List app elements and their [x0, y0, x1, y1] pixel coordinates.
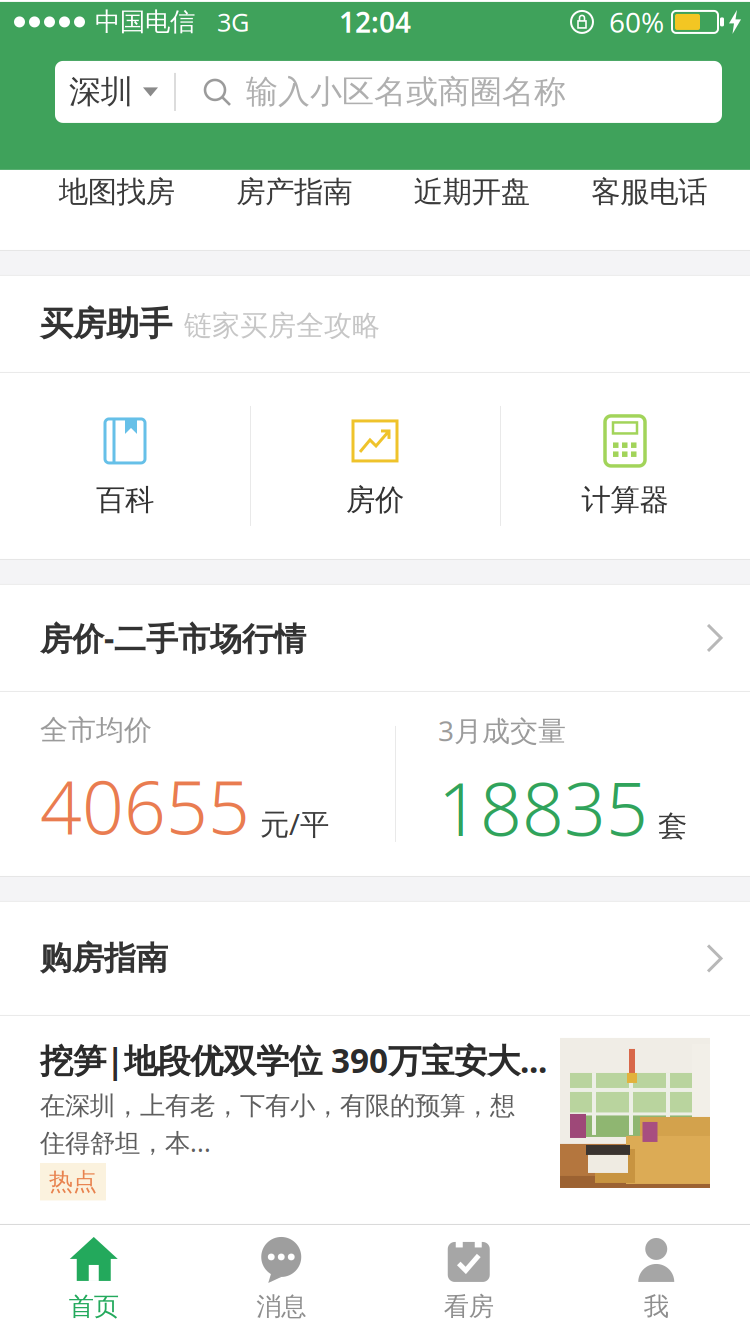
staticText: 链家买房全攻略	[184, 308, 380, 343]
staticText: 60%	[609, 3, 664, 40]
staticText: 购房指南	[40, 939, 168, 978]
staticText: 全市均价	[40, 713, 152, 747]
button[interactable]: 房价-二手市场行情	[0, 585, 750, 691]
staticText: 12:04	[339, 3, 411, 40]
staticText: 我	[644, 1291, 669, 1322]
staticText: 中国电信	[95, 6, 195, 37]
staticText: 近期开盘	[414, 174, 530, 210]
button[interactable]: 百科	[0, 414, 250, 518]
button[interactable]: 房价	[250, 414, 500, 518]
staticText: 热点	[49, 1167, 97, 1196]
button[interactable]: 地图找房	[28, 174, 205, 210]
staticText: 深圳	[69, 72, 133, 112]
staticText: 元/平	[260, 804, 329, 843]
button[interactable]: 消息	[187, 1237, 375, 1322]
button[interactable]: 客服电话	[560, 174, 738, 210]
staticText: 住得舒坦，本...	[40, 1125, 211, 1159]
staticText: 房价-二手市场行情	[40, 617, 306, 659]
staticText: 看房	[444, 1291, 494, 1322]
staticText: 消息	[256, 1291, 306, 1322]
staticText: 3月成交量	[438, 712, 566, 749]
button[interactable]: 购房指南	[0, 902, 750, 1015]
button[interactable]: 看房	[375, 1237, 562, 1322]
staticText: 套	[658, 808, 687, 844]
button[interactable]: 房产指南	[205, 174, 383, 210]
staticText: 18835	[438, 759, 648, 856]
staticText: 房价	[346, 482, 404, 518]
staticText: 40655	[40, 757, 250, 855]
staticText: 房产指南	[236, 174, 352, 210]
staticText: 地图找房	[59, 174, 175, 210]
staticText: 计算器	[581, 482, 668, 518]
button[interactable]: 近期开盘	[383, 174, 560, 210]
staticText: 挖笋|地段优双学位 390万宝安大...	[40, 1038, 547, 1082]
button[interactable]: 首页	[0, 1237, 187, 1322]
button[interactable]: 挖笋|地段优双学位 390万宝安大...	[0, 1016, 750, 1224]
button[interactable]: 深圳	[55, 72, 174, 112]
staticText: 输入小区名或商圈名称	[246, 72, 566, 112]
staticText: 买房助手	[40, 303, 172, 344]
staticText: 在深圳，上有老，下有小，有限的预算，想	[40, 1090, 515, 1121]
staticText: 3G	[217, 5, 249, 39]
staticText: 客服电话	[591, 174, 707, 210]
button[interactable]: 输入小区名或商圈名称	[176, 72, 722, 112]
button[interactable]: 计算器	[500, 414, 750, 518]
staticText: 百科	[96, 482, 154, 518]
staticText: 首页	[69, 1291, 119, 1322]
button[interactable]: 我	[562, 1237, 750, 1322]
